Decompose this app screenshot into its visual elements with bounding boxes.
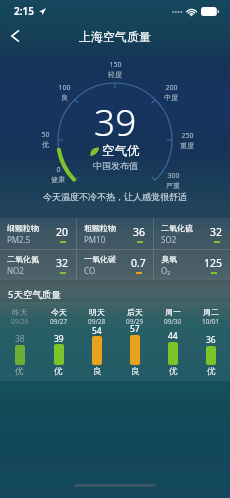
staticText: 中国发布值	[93, 160, 138, 171]
staticText: 周二	[203, 307, 219, 317]
staticText: 重度	[180, 141, 194, 150]
staticText: 二氧化硫	[161, 223, 193, 233]
staticText: 32	[56, 256, 69, 270]
staticText: 39	[54, 333, 64, 345]
staticText: CO	[84, 265, 96, 276]
staticText: 09/29	[126, 317, 144, 326]
staticText: 优	[42, 140, 49, 149]
staticText: 良	[61, 93, 68, 102]
staticText: 300	[167, 171, 180, 181]
staticText: 250	[181, 131, 194, 141]
staticText: 36	[133, 225, 146, 239]
staticText: SO2	[161, 234, 177, 245]
staticText: 50	[41, 130, 50, 140]
staticText: NO2	[7, 265, 24, 276]
staticText: 良	[93, 366, 102, 377]
staticText: 二氧化氮	[7, 254, 39, 264]
button[interactable]: 二氧化硫	[154, 218, 230, 249]
staticText: 54	[92, 325, 102, 337]
staticText: 良	[131, 366, 140, 377]
button[interactable]: 臭氧	[154, 250, 230, 280]
staticText: 臭氧	[161, 254, 177, 264]
staticText: 细颗粒物	[7, 223, 39, 233]
staticText: 125	[204, 256, 223, 270]
staticText: 09/28	[88, 317, 106, 326]
staticText: 44	[168, 330, 178, 342]
staticText: 09/26	[11, 317, 29, 326]
staticText: 20	[56, 225, 69, 239]
staticText: 严重	[166, 181, 180, 190]
staticText: 轻度	[108, 70, 122, 79]
staticText: 09/30	[164, 317, 182, 326]
staticText: 优	[15, 366, 24, 377]
button[interactable]: 二氧化氮	[0, 250, 76, 280]
staticText: 明天	[89, 307, 105, 317]
staticText: 优	[54, 366, 63, 377]
staticText: 0.7	[131, 256, 146, 270]
button[interactable]: 周二	[192, 302, 230, 381]
staticText: 健康	[51, 175, 65, 184]
staticText: 36	[206, 334, 216, 346]
staticText: O₃	[161, 265, 171, 276]
staticText: 2:15	[14, 4, 34, 18]
staticText: PM10	[84, 234, 106, 245]
staticText: 39	[94, 96, 137, 146]
button[interactable]: 后天	[116, 302, 154, 381]
staticText: 10/01	[202, 317, 220, 326]
staticText: 38	[15, 333, 25, 345]
button[interactable]: 明天	[78, 302, 116, 381]
staticText: 周一	[165, 307, 181, 317]
staticText: 57	[130, 323, 140, 335]
staticText: 优	[207, 366, 216, 377]
button[interactable]: Back	[1, 22, 29, 50]
button[interactable]: 昨天	[0, 302, 39, 381]
staticText: 后天	[127, 307, 143, 317]
staticText: 200	[165, 83, 178, 93]
button[interactable]: 细颗粒物	[0, 218, 76, 249]
staticText: 中度	[164, 93, 178, 102]
staticText: 5天空气质量	[8, 288, 61, 301]
staticText: 一氧化碳	[84, 254, 116, 264]
staticText: 0	[56, 165, 61, 175]
staticText: PM2.5	[7, 234, 31, 245]
staticText: 150	[109, 60, 122, 70]
button[interactable]: 粗颗粒物	[77, 218, 153, 249]
staticText: 今天	[51, 307, 67, 317]
staticText: 粗颗粒物	[84, 223, 116, 233]
button[interactable]: 今天	[39, 302, 78, 381]
staticText: 100	[58, 83, 71, 93]
staticText: 优	[169, 366, 178, 377]
staticText: 今天温度不冷不热，让人感觉很舒适	[43, 191, 187, 202]
staticText: 空气优	[102, 143, 140, 159]
button[interactable]: 一氧化碳	[77, 250, 153, 280]
staticText: 09/27	[50, 317, 68, 326]
button[interactable]: 周一	[154, 302, 192, 381]
staticText: 上海空气质量	[79, 29, 151, 44]
staticText: 32	[210, 225, 223, 239]
staticText: 昨天	[12, 307, 28, 317]
